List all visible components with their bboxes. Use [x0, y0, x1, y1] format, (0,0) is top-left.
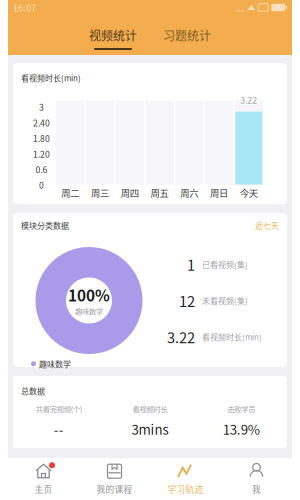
staticText: 周二	[61, 186, 79, 199]
staticText: 今天	[240, 186, 258, 199]
staticText: 0.6	[35, 163, 47, 176]
button[interactable]: 视频统计	[84, 27, 142, 50]
staticText: 看视频时长(min)	[21, 72, 81, 84]
staticText: 100%	[68, 284, 110, 306]
staticText: 0	[39, 179, 44, 191]
button[interactable]: 主页	[8, 458, 79, 500]
staticText: 主页	[34, 483, 52, 495]
staticText: 趣味数学	[75, 306, 103, 316]
button[interactable]: 我的课程	[79, 458, 150, 500]
staticText: 视频统计	[89, 27, 137, 44]
staticText: 已看视频(集)	[202, 258, 248, 270]
button[interactable]: 习题统计	[158, 27, 216, 50]
button[interactable]: 学习轨迹	[150, 458, 221, 500]
staticText: 近七天	[255, 219, 279, 231]
staticText: 周四	[121, 186, 139, 199]
staticText: 周五	[150, 186, 168, 199]
staticText: 1.80	[33, 132, 50, 144]
staticText: 我	[252, 483, 261, 495]
staticText: 13.9%	[223, 419, 260, 438]
button[interactable]: 近七天	[255, 219, 279, 231]
staticText: 12	[179, 290, 195, 311]
staticText: 2.40	[33, 116, 50, 129]
staticText: 3mins	[131, 419, 168, 438]
staticText: 模块分类数据	[21, 219, 69, 231]
staticText: 看视频时长	[132, 404, 167, 414]
button[interactable]: 我	[221, 458, 292, 500]
staticText: 总数据	[21, 385, 45, 397]
staticText: 周六	[180, 186, 198, 199]
staticText: --	[54, 419, 64, 438]
staticText: 未看视频(集)	[202, 295, 248, 306]
staticText: 周日	[210, 186, 228, 199]
staticText: 学习轨迹	[167, 483, 203, 495]
staticText: 趣味数学	[39, 358, 71, 370]
staticText: 3.22	[167, 326, 195, 347]
staticText: 习题统计	[163, 27, 211, 44]
staticText: 3.22	[240, 94, 257, 106]
staticText: 击败学员	[227, 404, 255, 414]
staticText: 1.20	[33, 148, 50, 160]
staticText: 共看完视频(个)	[36, 404, 82, 414]
staticText: 看视频时长(min)	[202, 331, 262, 342]
staticText: 16:07	[13, 1, 36, 14]
staticText: 1	[187, 254, 195, 275]
staticText: 3	[39, 101, 44, 113]
staticText: 周三	[91, 186, 109, 199]
staticText: 我的课程	[96, 483, 132, 495]
